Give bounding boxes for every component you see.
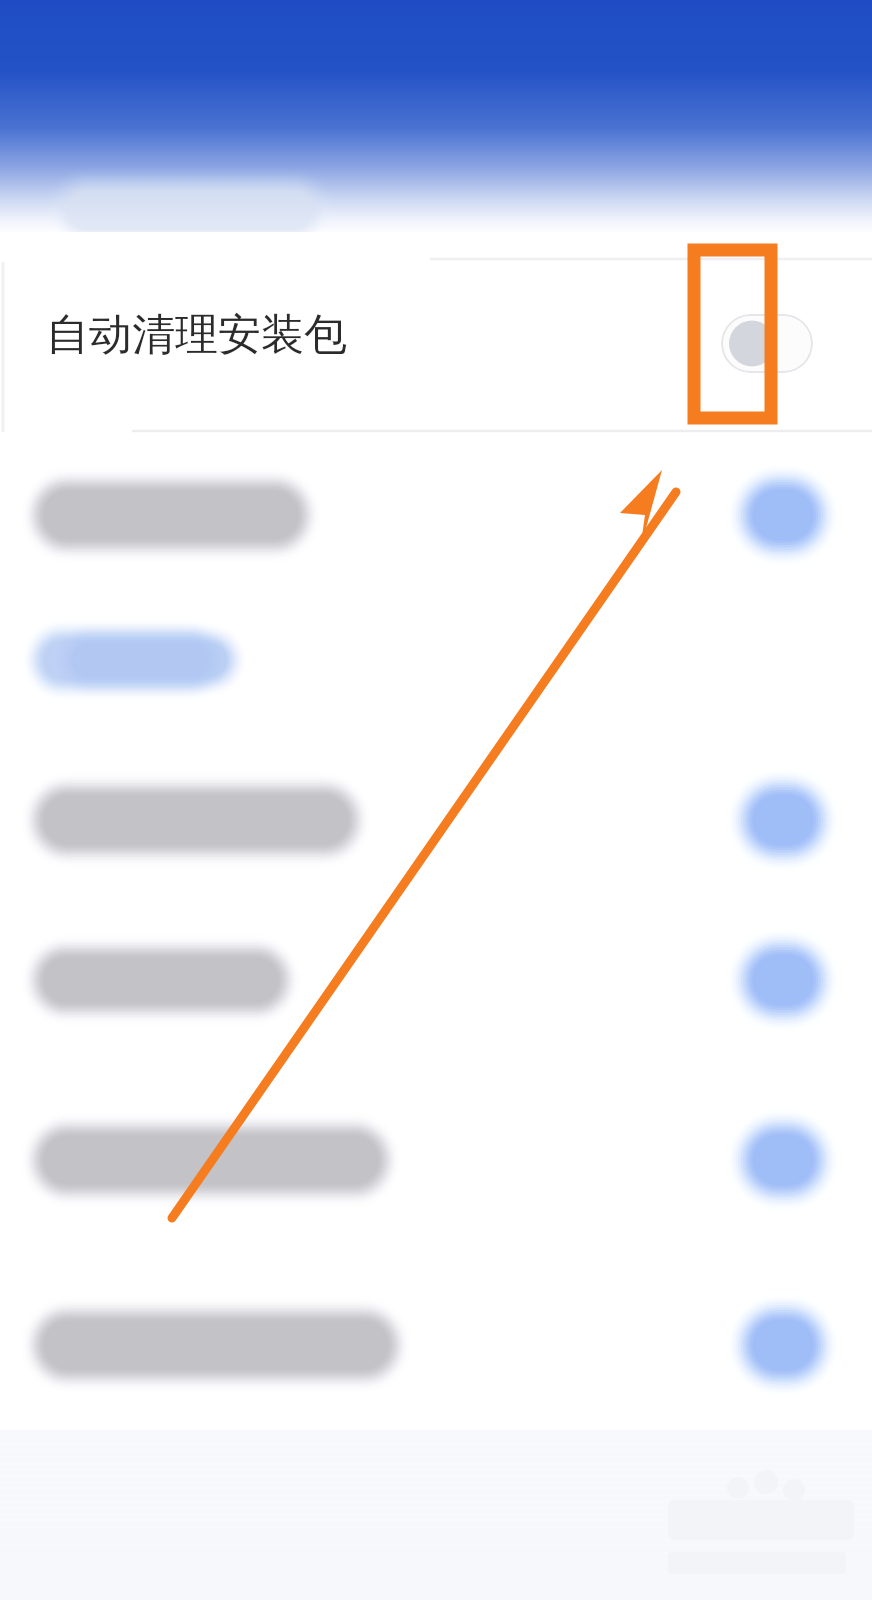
staticText: 自动清理安装包: [46, 308, 347, 362]
button[interactable]: 自动清理安装包 开关: [721, 314, 813, 373]
button[interactable]: 自动清理安装包: [0, 232, 872, 432]
